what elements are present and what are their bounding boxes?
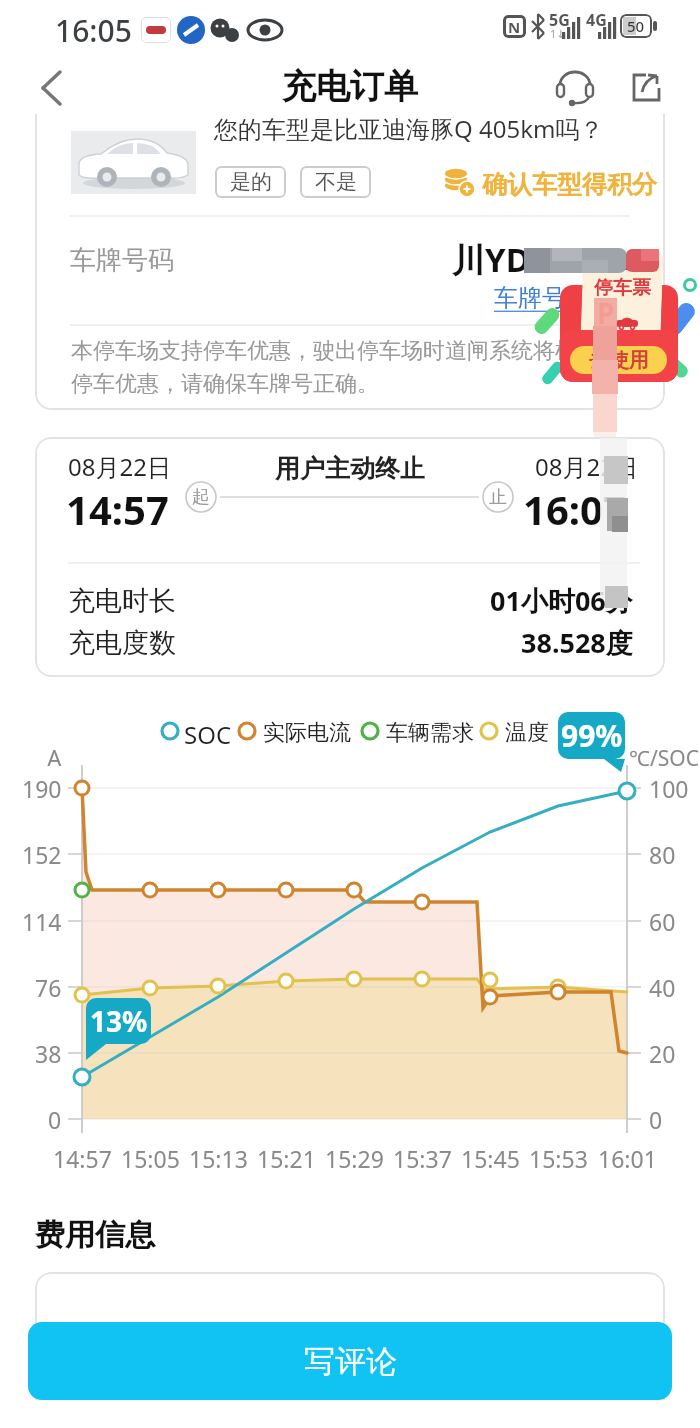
button[interactable]: [622, 64, 670, 112]
staticText: 车牌号有误？: [494, 283, 638, 313]
staticText: 车辆需求: [386, 719, 474, 747]
staticText: 温度: [505, 719, 549, 747]
staticText: 是的: [230, 169, 272, 195]
staticText: SOC: [184, 718, 232, 751]
button[interactable]: 去使用: [570, 346, 667, 374]
staticText: 15:53: [529, 1143, 588, 1171]
staticText: 4G: [586, 9, 607, 31]
button[interactable]: [560, 250, 680, 384]
button[interactable]: 车牌号有误？: [494, 283, 638, 313]
staticText: 不是: [315, 169, 357, 195]
staticText: 5G: [549, 9, 570, 31]
staticText: 50: [627, 16, 645, 36]
staticText: 费用信息: [35, 1216, 155, 1254]
staticText: 14:57: [53, 1143, 112, 1171]
staticText: 20: [649, 1038, 676, 1069]
button[interactable]: 不是: [300, 166, 371, 198]
staticText: 您的车型是比亚迪海豚Q 405km吗？: [214, 112, 604, 145]
staticText: 08月22日: [68, 450, 171, 483]
staticText: 08月22日: [535, 450, 638, 483]
staticText: 停车票: [594, 276, 651, 298]
staticText: 1↓: [550, 26, 566, 41]
staticText: 16:07: [523, 482, 626, 536]
staticText: 01小时06分: [490, 582, 633, 614]
staticText: 本停车场支持停车优惠，驶出停车场时道闸系统将根据车: [71, 337, 621, 365]
staticText: 16:01: [598, 1143, 657, 1171]
staticText: 15:05: [121, 1143, 180, 1171]
staticText: 确认车型得积分: [482, 169, 657, 200]
staticText: 14:57: [66, 482, 169, 536]
staticText: 充电度数: [68, 626, 176, 660]
staticText: 停车优惠，请确保车牌号正确。: [71, 370, 379, 398]
staticText: 114: [22, 906, 62, 936]
staticText: 川YD: [452, 237, 530, 282]
staticText: 190: [22, 773, 62, 803]
staticText: 充电时长: [68, 584, 176, 618]
button[interactable]: [550, 62, 598, 110]
staticText: 152: [22, 839, 62, 869]
staticText: 起: [192, 486, 210, 509]
staticText: 15:37: [393, 1143, 452, 1171]
staticText: 0: [649, 1104, 663, 1135]
staticText: 80: [649, 839, 676, 870]
staticText: 0: [48, 1104, 62, 1134]
staticText: 去使用: [589, 348, 649, 373]
staticText: N: [508, 17, 521, 37]
staticText: 38: [35, 1038, 62, 1068]
staticText: 充电订单: [282, 65, 418, 108]
staticText: 16:05: [55, 10, 132, 51]
staticText: 用户主动终止: [275, 453, 425, 483]
staticText: 15:13: [189, 1143, 248, 1171]
staticText: 车牌号码: [70, 244, 174, 277]
staticText: A: [47, 742, 62, 766]
staticText: 实际电流: [263, 719, 351, 747]
staticText: ℃/SOC: [629, 744, 699, 773]
staticText: 60: [649, 906, 676, 937]
staticText: 15:21: [257, 1143, 316, 1171]
staticText: 15:29: [325, 1143, 384, 1171]
staticText: 38.528度: [521, 624, 633, 656]
staticText: 写评论: [304, 1342, 397, 1381]
staticText: 15:45: [461, 1143, 520, 1171]
button[interactable]: [30, 66, 74, 110]
button[interactable]: 是的: [215, 166, 286, 198]
staticText: 13%: [90, 1002, 148, 1040]
button[interactable]: 写评论: [28, 1322, 672, 1400]
staticText: 99%: [561, 715, 623, 756]
staticText: 76: [35, 972, 62, 1002]
staticText: 40: [649, 972, 676, 1003]
staticText: 100: [649, 773, 689, 804]
staticText: 止: [489, 486, 507, 509]
staticText: P: [597, 294, 615, 324]
